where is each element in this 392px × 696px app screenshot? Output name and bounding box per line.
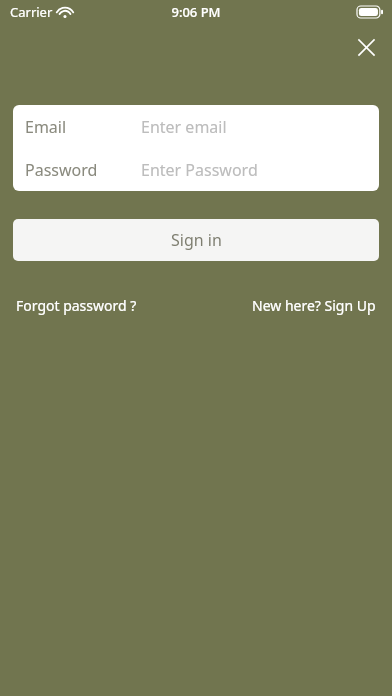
staticText: Sign in bbox=[171, 229, 222, 251]
button[interactable]: Password bbox=[13, 148, 379, 191]
staticText: Email bbox=[25, 116, 67, 138]
staticText: Carrier bbox=[10, 3, 53, 21]
staticText: Enter Password bbox=[141, 159, 258, 181]
button[interactable]: Sign in bbox=[13, 219, 379, 261]
button[interactable]: Email bbox=[13, 105, 379, 148]
staticText: 9:06 PM bbox=[171, 3, 221, 21]
staticText: Forgot password ? bbox=[16, 296, 137, 315]
button[interactable]: Close bbox=[348, 29, 384, 65]
button[interactable]: Forgot password ? bbox=[16, 296, 137, 315]
staticText: New here? Sign Up bbox=[252, 296, 376, 315]
button[interactable]: New here? Sign Up bbox=[252, 296, 376, 315]
staticText: Password bbox=[25, 159, 98, 181]
staticText: Enter email bbox=[141, 116, 227, 138]
